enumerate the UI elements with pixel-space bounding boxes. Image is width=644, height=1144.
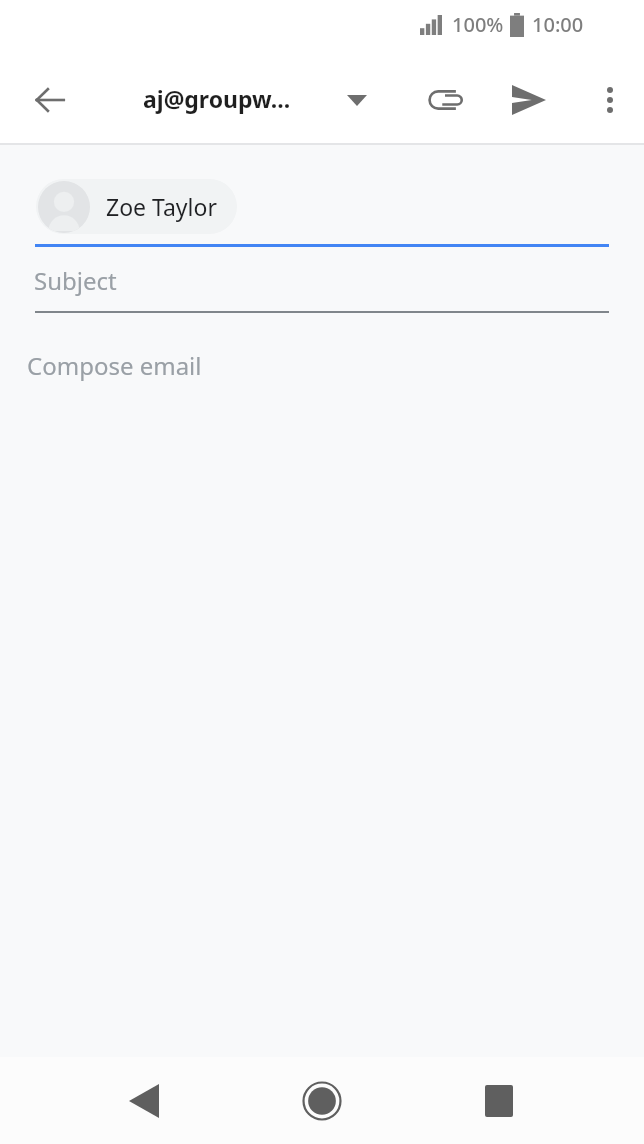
button[interactable]: Back xyxy=(22,72,78,128)
button[interactable]: Attach file xyxy=(416,71,474,129)
staticText: Zoe Taylor xyxy=(106,191,217,222)
staticText: 10:00 xyxy=(532,11,584,38)
button[interactable]: Back xyxy=(110,1067,178,1135)
button[interactable]: Home xyxy=(288,1067,356,1135)
staticText: aj@groupw... xyxy=(143,83,291,114)
button[interactable]: Compose email xyxy=(0,345,644,382)
button[interactable]: Zoe Taylor xyxy=(36,179,237,234)
button[interactable]: Send xyxy=(500,71,558,129)
staticText: Subject xyxy=(34,264,117,297)
button[interactable]: More options xyxy=(582,72,638,128)
button[interactable]: Select sender xyxy=(332,75,382,125)
button[interactable]: Subject xyxy=(0,264,644,313)
staticText: 100% xyxy=(452,11,504,38)
button[interactable]: Recent apps xyxy=(465,1067,533,1135)
